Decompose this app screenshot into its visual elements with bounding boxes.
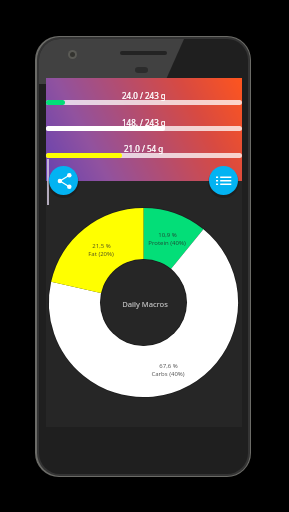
button[interactable]: Share <box>49 166 78 195</box>
staticText: 67,6 % <box>159 362 178 370</box>
staticText: Carbs (40%) <box>151 370 185 378</box>
staticText: 24.0 / 243 g <box>122 90 166 101</box>
staticText: Protein (40%) <box>148 239 186 247</box>
staticText: 21,5 % <box>92 242 111 250</box>
staticText: 10,9 % <box>158 231 177 239</box>
staticText: Fat (20%) <box>88 250 114 258</box>
staticText: Daily Macros <box>122 299 168 309</box>
staticText: 148. / 243 g <box>122 117 166 128</box>
button[interactable]: Show list <box>209 166 238 195</box>
staticText: 21.0 / 54 g <box>124 143 164 154</box>
